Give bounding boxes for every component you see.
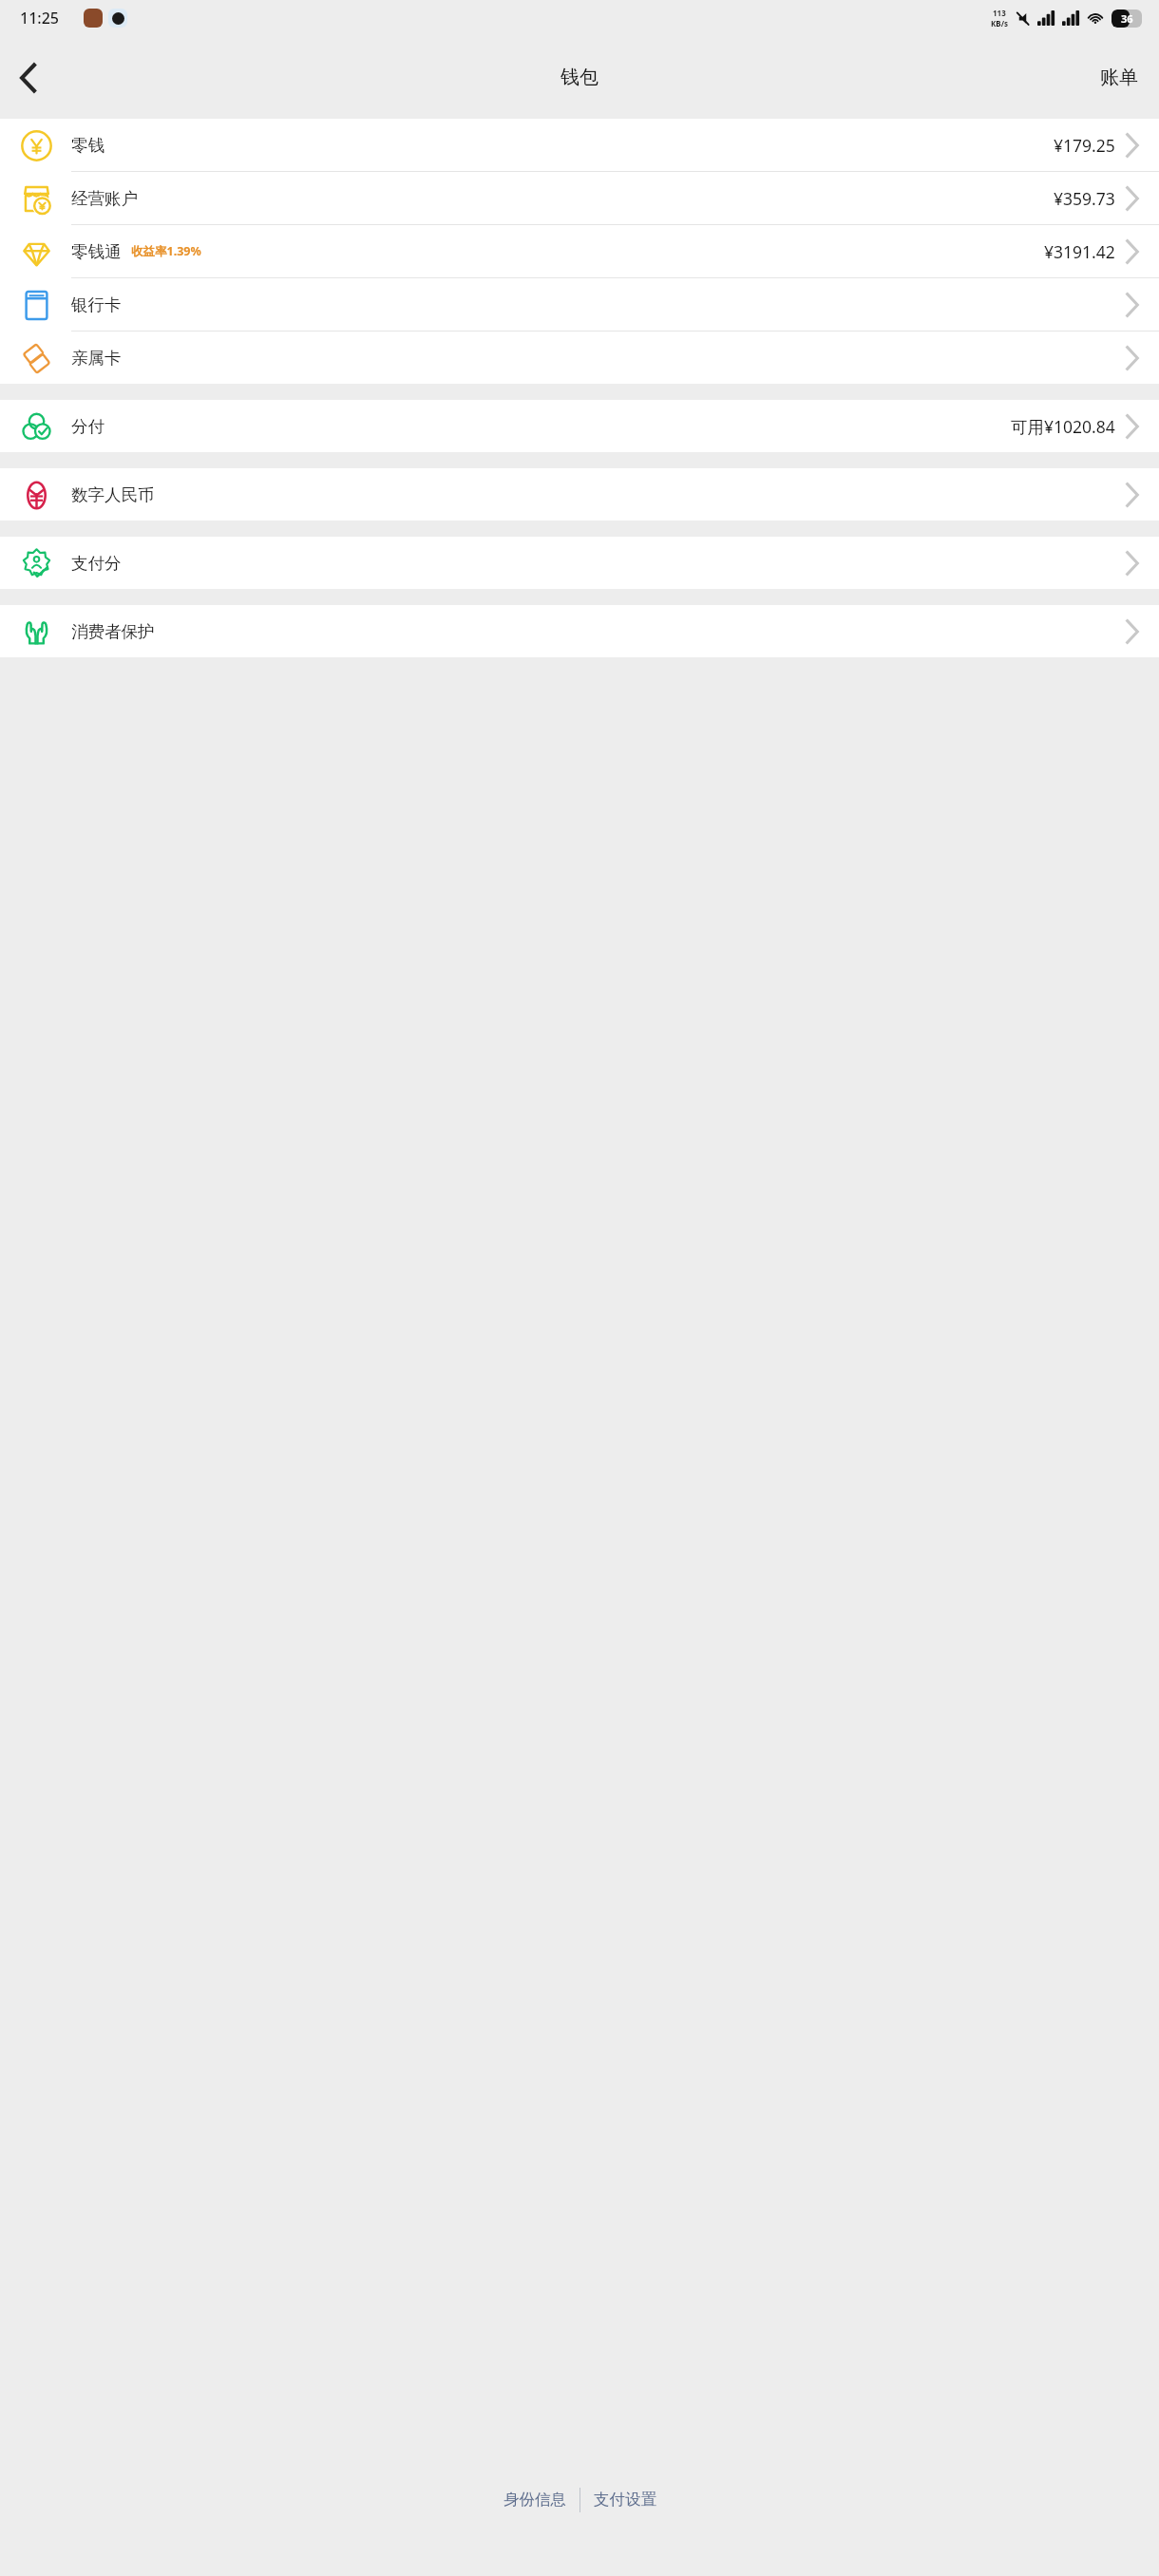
staticText: ¥3191.42 xyxy=(1044,240,1115,263)
staticText: 113 xyxy=(993,8,1006,18)
button[interactable]: 支付设置 xyxy=(580,2482,670,2517)
staticText: 消费者保护 xyxy=(71,621,155,642)
button[interactable]: 零钱 xyxy=(0,119,1159,171)
staticText: 亲属卡 xyxy=(71,348,122,369)
staticText: 收益率1.39% xyxy=(131,243,201,259)
button[interactable]: 亲属卡 xyxy=(0,331,1159,384)
button[interactable]: 消费者保护 xyxy=(0,605,1159,657)
button[interactable]: 支付分 xyxy=(0,537,1159,589)
button[interactable]: 数字人民币 xyxy=(0,468,1159,521)
staticText: ¥359.73 xyxy=(1054,187,1115,210)
staticText: 支付分 xyxy=(71,553,122,574)
button[interactable]: 分付 xyxy=(0,400,1159,452)
staticText: 11:25 xyxy=(20,8,59,28)
staticText: 身份信息 xyxy=(503,2490,566,2510)
button[interactable]: 银行卡 xyxy=(0,278,1159,331)
staticText: KB/s xyxy=(991,18,1008,28)
staticText: 零钱通 xyxy=(71,241,122,262)
staticText: 支付设置 xyxy=(594,2490,656,2510)
staticText: 账单 xyxy=(1100,66,1138,89)
staticText: ¥179.25 xyxy=(1054,134,1115,157)
button[interactable]: 零钱通 xyxy=(0,225,1159,277)
button[interactable]: Back xyxy=(0,50,55,105)
staticText: 可用¥1020.84 xyxy=(1011,415,1115,438)
staticText: 零钱 xyxy=(71,135,104,156)
staticText: 钱包 xyxy=(560,66,598,89)
staticText: 经营账户 xyxy=(71,188,138,209)
staticText: 数字人民币 xyxy=(71,484,155,505)
button[interactable]: 身份信息 xyxy=(490,2482,579,2517)
staticText: 分付 xyxy=(71,416,104,437)
button[interactable]: 账单 xyxy=(1079,54,1159,101)
staticText: 36 xyxy=(1121,11,1133,26)
staticText: 银行卡 xyxy=(71,294,122,315)
button[interactable]: 经营账户 xyxy=(0,172,1159,224)
